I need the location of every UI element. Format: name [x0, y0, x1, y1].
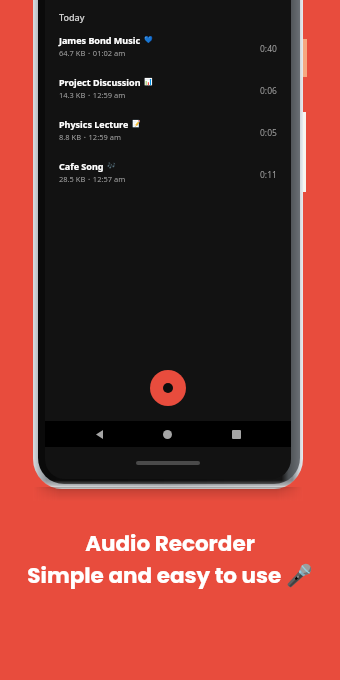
staticText: Project Discussion — [59, 76, 141, 88]
staticText: 0:06 — [260, 85, 277, 97]
staticText: 14.3 KB・12:59 am — [59, 90, 126, 100]
staticText: 28.5 KB・12:57 am — [59, 174, 126, 184]
staticText: 64.7 KB・01:02 am — [59, 48, 126, 58]
staticText: Today — [59, 11, 85, 23]
button[interactable]: Cafe Song — [45, 151, 291, 193]
staticText: 0:40 — [260, 43, 277, 55]
button[interactable]: Project Discussion — [45, 67, 291, 109]
staticText: 🎶 — [107, 162, 116, 170]
staticText: Cafe Song — [59, 160, 104, 172]
button[interactable]: James Bond Music — [45, 25, 291, 67]
staticText: 📝 — [132, 120, 141, 128]
staticText: 📊 — [144, 78, 153, 86]
button[interactable]: Physics Lecture — [45, 109, 291, 151]
staticText: Audio Recorder — [85, 528, 255, 558]
staticText: 💙 — [144, 36, 153, 44]
staticText: 0:11 — [260, 169, 277, 181]
staticText: James Bond Music — [59, 34, 141, 46]
staticText: 8.8 KB・12:59 am — [59, 132, 121, 142]
button[interactable]: Record — [150, 370, 186, 406]
button[interactable]: Back — [85, 421, 113, 447]
button[interactable]: Home — [153, 421, 181, 447]
staticText: 0:05 — [260, 127, 277, 139]
staticText: Physics Lecture — [59, 118, 129, 130]
button[interactable]: Recent apps — [222, 421, 250, 447]
staticText: Simple and easy to use 🎤 — [27, 560, 313, 590]
